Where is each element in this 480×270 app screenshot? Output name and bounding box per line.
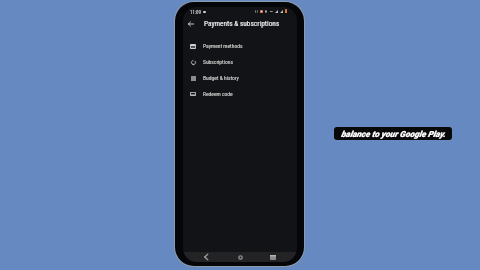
button[interactable]: Back bbox=[200, 252, 211, 262]
button[interactable]: Recent apps bbox=[267, 252, 278, 262]
button[interactable]: Home bbox=[235, 252, 246, 262]
button[interactable]: Redeem code bbox=[183, 86, 297, 102]
staticText: 11:09 bbox=[190, 9, 201, 15]
staticText: balance to your Google Play. bbox=[341, 129, 446, 139]
button[interactable]: Subscriptions bbox=[183, 54, 297, 70]
button[interactable]: Payment methods bbox=[183, 38, 297, 54]
button[interactable]: Navigate up bbox=[185, 18, 197, 30]
staticText: Subscriptions bbox=[203, 59, 233, 66]
button[interactable]: Budget & history bbox=[183, 70, 297, 86]
staticText: Budget & history bbox=[203, 75, 239, 82]
staticText: Payments & subscriptions bbox=[204, 19, 280, 28]
staticText: Redeem code bbox=[203, 91, 233, 98]
staticText: Payment methods bbox=[203, 43, 243, 50]
